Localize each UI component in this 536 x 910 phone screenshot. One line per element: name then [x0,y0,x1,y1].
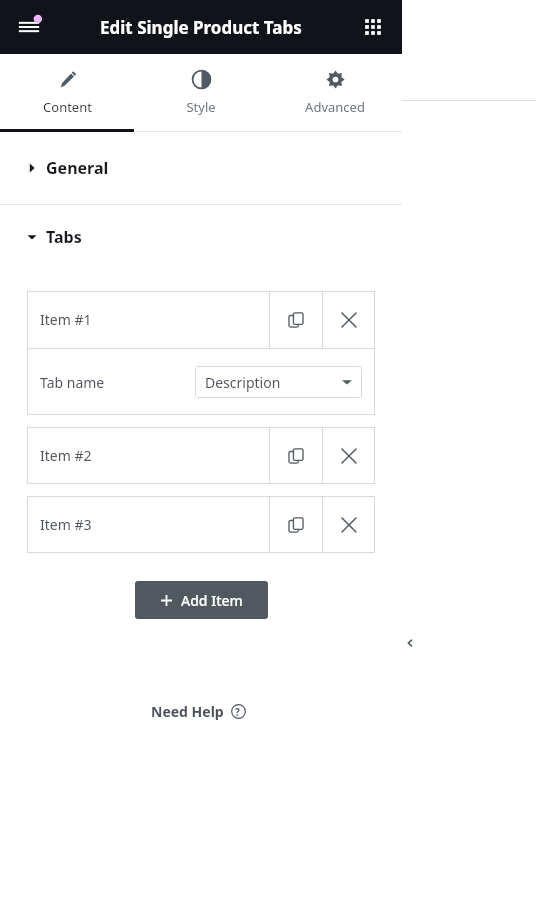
button[interactable]: Add Item [135,581,268,619]
button[interactable]: Description [195,366,362,398]
staticText: Advanced [305,98,365,116]
button[interactable]: Item #3 [27,496,269,553]
staticText: Tab name [40,373,105,392]
button[interactable]: Style [134,54,268,132]
button[interactable]: Menu [12,10,46,44]
button[interactable]: Apps [356,10,390,44]
button[interactable]: Duplicate [270,427,322,484]
button[interactable]: Remove [323,496,375,553]
button[interactable]: Advanced [268,54,402,132]
button[interactable]: Item #2 [27,427,269,484]
staticText: Item #3 [40,515,92,534]
staticText: Item #2 [40,446,92,465]
staticText: Description [205,373,281,392]
button[interactable]: Item #1 [27,291,269,348]
staticText: Tabs [46,226,82,248]
button[interactable]: Remove [323,291,375,348]
staticText: General [46,157,109,179]
staticText: Edit Single Product Tabs [100,16,302,39]
button[interactable]: General [0,132,402,204]
staticText: Item #1 [40,310,92,329]
button[interactable]: Collapse panel [400,618,420,668]
button[interactable]: Content [0,54,134,132]
staticText: Add Item [181,591,243,610]
button[interactable]: Remove [323,427,375,484]
staticText: Need Help [151,702,224,721]
staticText: Content [43,98,92,116]
button[interactable]: Duplicate [270,496,322,553]
staticText: Style [186,98,216,116]
button[interactable]: Duplicate [270,291,322,348]
staticText: ? [235,705,240,719]
button[interactable]: Need Help [145,696,257,727]
button[interactable]: Tabs [0,205,402,269]
